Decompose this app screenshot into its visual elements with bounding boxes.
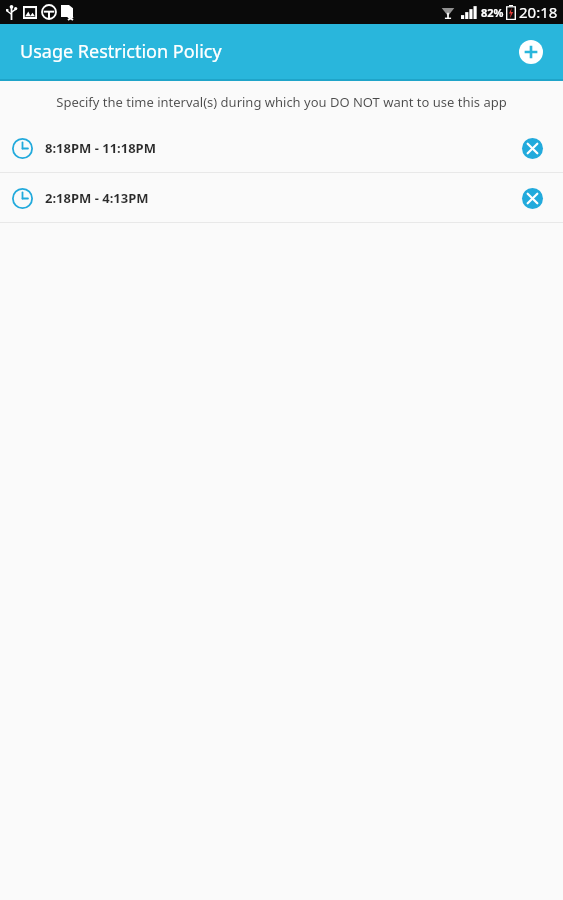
button[interactable]: Remove 8:18PM - 11:18PM — [515, 131, 549, 165]
staticText: 20:18 — [519, 2, 558, 22]
button[interactable]: Remove 2:18PM - 4:13PM — [515, 181, 549, 215]
staticText: 8:18PM - 11:18PM — [45, 139, 515, 157]
button[interactable]: 2:18PM - 4:13PM — [0, 173, 563, 222]
staticText: 82% — [481, 5, 504, 20]
staticText: Usage Restriction Policy — [20, 39, 222, 64]
button[interactable]: 8:18PM - 11:18PM — [0, 123, 563, 172]
button[interactable]: Add time interval — [513, 34, 549, 70]
staticText: 2:18PM - 4:13PM — [45, 189, 515, 207]
staticText: Specify the time interval(s) during whic… — [56, 93, 507, 111]
